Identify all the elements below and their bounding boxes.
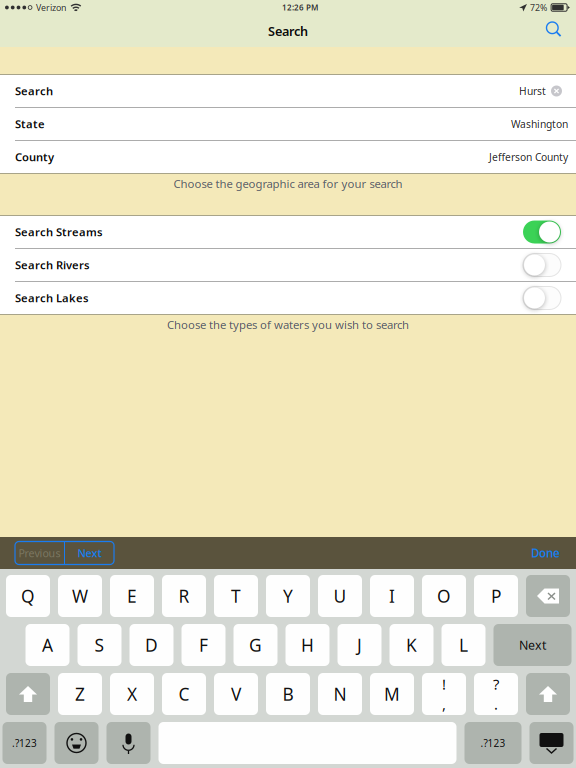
- button[interactable]: Search: [0, 75, 576, 107]
- staticText: Z: [75, 682, 85, 706]
- staticText: Y: [283, 584, 293, 608]
- button[interactable]: O: [422, 575, 466, 617]
- button[interactable]: H: [285, 624, 329, 666]
- staticText: State: [15, 116, 45, 132]
- staticText: Choose the geographic area for your sear…: [173, 176, 402, 191]
- button[interactable]: R: [162, 575, 206, 617]
- button[interactable]: V: [214, 673, 258, 715]
- button[interactable]: .?123: [2, 722, 46, 764]
- staticText: Search Streams: [15, 224, 103, 240]
- button[interactable]: Next: [493, 624, 571, 666]
- button[interactable]: .?123: [464, 722, 521, 764]
- button[interactable]: I: [370, 575, 414, 617]
- button[interactable]: K: [389, 624, 433, 666]
- button[interactable]: C: [162, 673, 206, 715]
- button[interactable]: State: [0, 108, 576, 140]
- staticText: Search Rivers: [15, 257, 90, 273]
- button[interactable]: G: [233, 624, 277, 666]
- button[interactable]: L: [441, 624, 485, 666]
- button[interactable]: N: [318, 673, 362, 715]
- staticText: B: [282, 682, 293, 706]
- staticText: O: [437, 584, 451, 608]
- staticText: Previous: [18, 546, 60, 560]
- button[interactable]: Shift: [6, 673, 50, 715]
- staticText: 12:26 PM: [282, 2, 318, 13]
- button[interactable]: Q: [6, 575, 50, 617]
- staticText: X: [127, 682, 137, 706]
- staticText: S: [94, 633, 104, 657]
- staticText: F: [199, 633, 208, 657]
- staticText: D: [145, 633, 158, 657]
- button[interactable]: A: [25, 624, 69, 666]
- staticText: Jefferson County: [489, 150, 568, 164]
- button[interactable]: Done: [523, 540, 568, 566]
- staticText: Search Lakes: [15, 290, 89, 306]
- staticText: !: [442, 674, 446, 694]
- button[interactable]: J: [337, 624, 381, 666]
- button[interactable]: P: [474, 575, 518, 617]
- button[interactable]: Search Lakes: [0, 282, 576, 314]
- staticText: County: [15, 149, 54, 165]
- button[interactable]: Search Rivers: [0, 249, 576, 281]
- staticText: N: [333, 682, 346, 706]
- staticText: J: [357, 633, 362, 657]
- staticText: H: [301, 633, 314, 657]
- staticText: .: [494, 694, 498, 714]
- button[interactable]: W: [58, 575, 102, 617]
- staticText: Search: [268, 22, 308, 40]
- staticText: ,: [442, 694, 446, 714]
- button[interactable]: Hide Keyboard: [529, 722, 573, 764]
- button[interactable]: Emoji: [54, 722, 98, 764]
- staticText: Done: [531, 545, 560, 561]
- button[interactable]: T: [214, 575, 258, 617]
- button[interactable]: B: [266, 673, 310, 715]
- staticText: Search: [15, 83, 53, 99]
- button[interactable]: D: [129, 624, 173, 666]
- staticText: G: [249, 633, 262, 657]
- staticText: I: [389, 584, 395, 608]
- staticText: ?: [493, 674, 499, 694]
- staticText: K: [406, 633, 417, 657]
- button[interactable]: F: [181, 624, 225, 666]
- staticText: W: [72, 584, 88, 608]
- staticText: V: [231, 682, 241, 706]
- button[interactable]: County: [0, 141, 576, 173]
- staticText: Next: [519, 637, 546, 653]
- button[interactable]: Shift: [526, 673, 570, 715]
- button[interactable]: ! ,: [422, 673, 466, 715]
- button[interactable]: Next: [65, 541, 114, 564]
- staticText: Choose the types of waters you wish to s…: [167, 317, 409, 332]
- button[interactable]: Previous: [15, 541, 64, 564]
- button[interactable]: Dictation: [106, 722, 150, 764]
- button[interactable]: U: [318, 575, 362, 617]
- button[interactable]: E: [110, 575, 154, 617]
- staticText: 72%: [530, 1, 547, 13]
- button[interactable]: Z: [58, 673, 102, 715]
- staticText: Next: [77, 546, 101, 560]
- button[interactable]: Search: [534, 16, 576, 45]
- staticText: Q: [21, 584, 35, 608]
- button[interactable]: ? .: [474, 673, 518, 715]
- button[interactable]: M: [370, 673, 414, 715]
- staticText: Verizon: [36, 1, 66, 13]
- staticText: M: [384, 682, 400, 706]
- staticText: T: [231, 584, 241, 608]
- button[interactable]: Delete: [526, 575, 570, 617]
- staticText: A: [42, 633, 53, 657]
- staticText: .?123: [12, 736, 37, 750]
- button[interactable]: Y: [266, 575, 310, 617]
- staticText: P: [491, 584, 501, 608]
- button[interactable]: X: [110, 673, 154, 715]
- staticText: .?123: [480, 736, 505, 750]
- staticText: Hurst: [519, 84, 546, 98]
- button[interactable]: S: [77, 624, 121, 666]
- staticText: R: [178, 584, 189, 608]
- staticText: E: [127, 584, 137, 608]
- button[interactable]: Search Streams: [0, 216, 576, 248]
- staticText: L: [459, 633, 468, 657]
- staticText: Washington: [511, 117, 568, 131]
- staticText: C: [178, 682, 189, 706]
- staticText: U: [333, 584, 346, 608]
